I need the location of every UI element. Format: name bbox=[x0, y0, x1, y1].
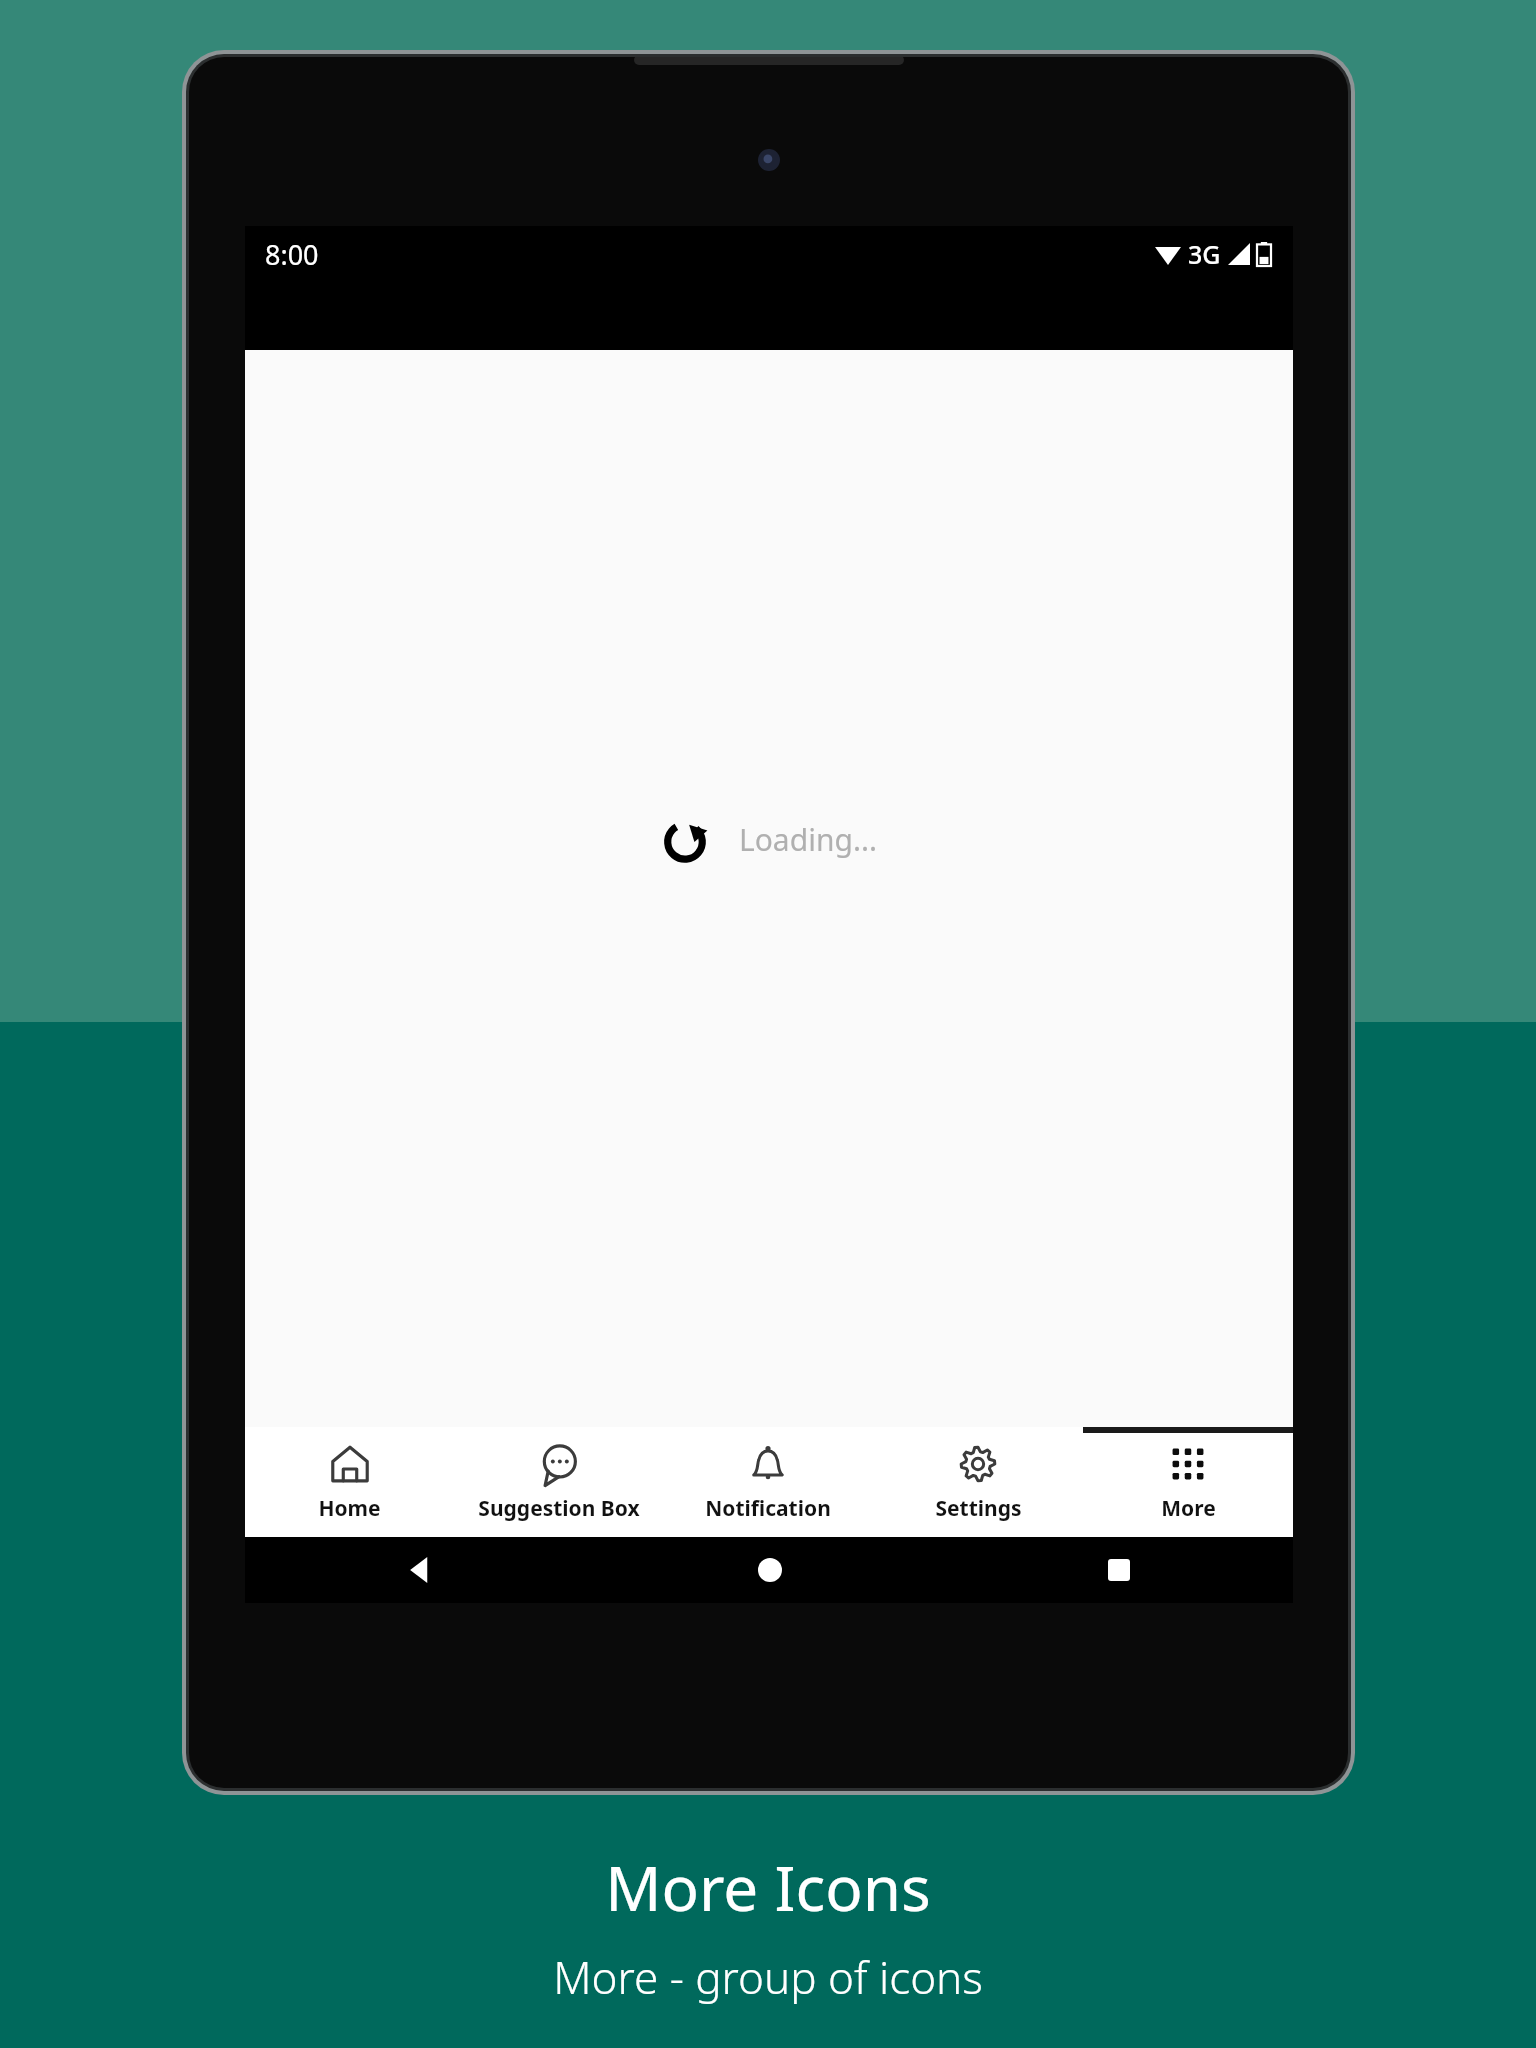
staticText: Suggestion Box bbox=[478, 1494, 640, 1523]
staticText: More Icons bbox=[605, 1845, 931, 1929]
staticText: More bbox=[1161, 1494, 1216, 1523]
staticText: More - group of icons bbox=[553, 1947, 983, 2007]
button[interactable]: Notification bbox=[663, 1427, 873, 1537]
button[interactable]: Home bbox=[245, 1427, 454, 1537]
staticText: Settings bbox=[935, 1494, 1022, 1523]
staticText: 3G bbox=[1188, 237, 1221, 271]
button[interactable]: Settings bbox=[873, 1427, 1083, 1537]
button[interactable]: Suggestion Box bbox=[454, 1427, 663, 1537]
staticText: Notification bbox=[705, 1494, 831, 1523]
button[interactable]: Back bbox=[245, 1537, 595, 1603]
staticText: Home bbox=[318, 1494, 381, 1523]
button[interactable]: More bbox=[1083, 1427, 1293, 1537]
button[interactable]: Recent apps bbox=[944, 1537, 1293, 1603]
button[interactable]: Home bbox=[595, 1537, 944, 1603]
staticText: 8:00 bbox=[265, 236, 319, 273]
staticText: Loading... bbox=[739, 819, 877, 860]
